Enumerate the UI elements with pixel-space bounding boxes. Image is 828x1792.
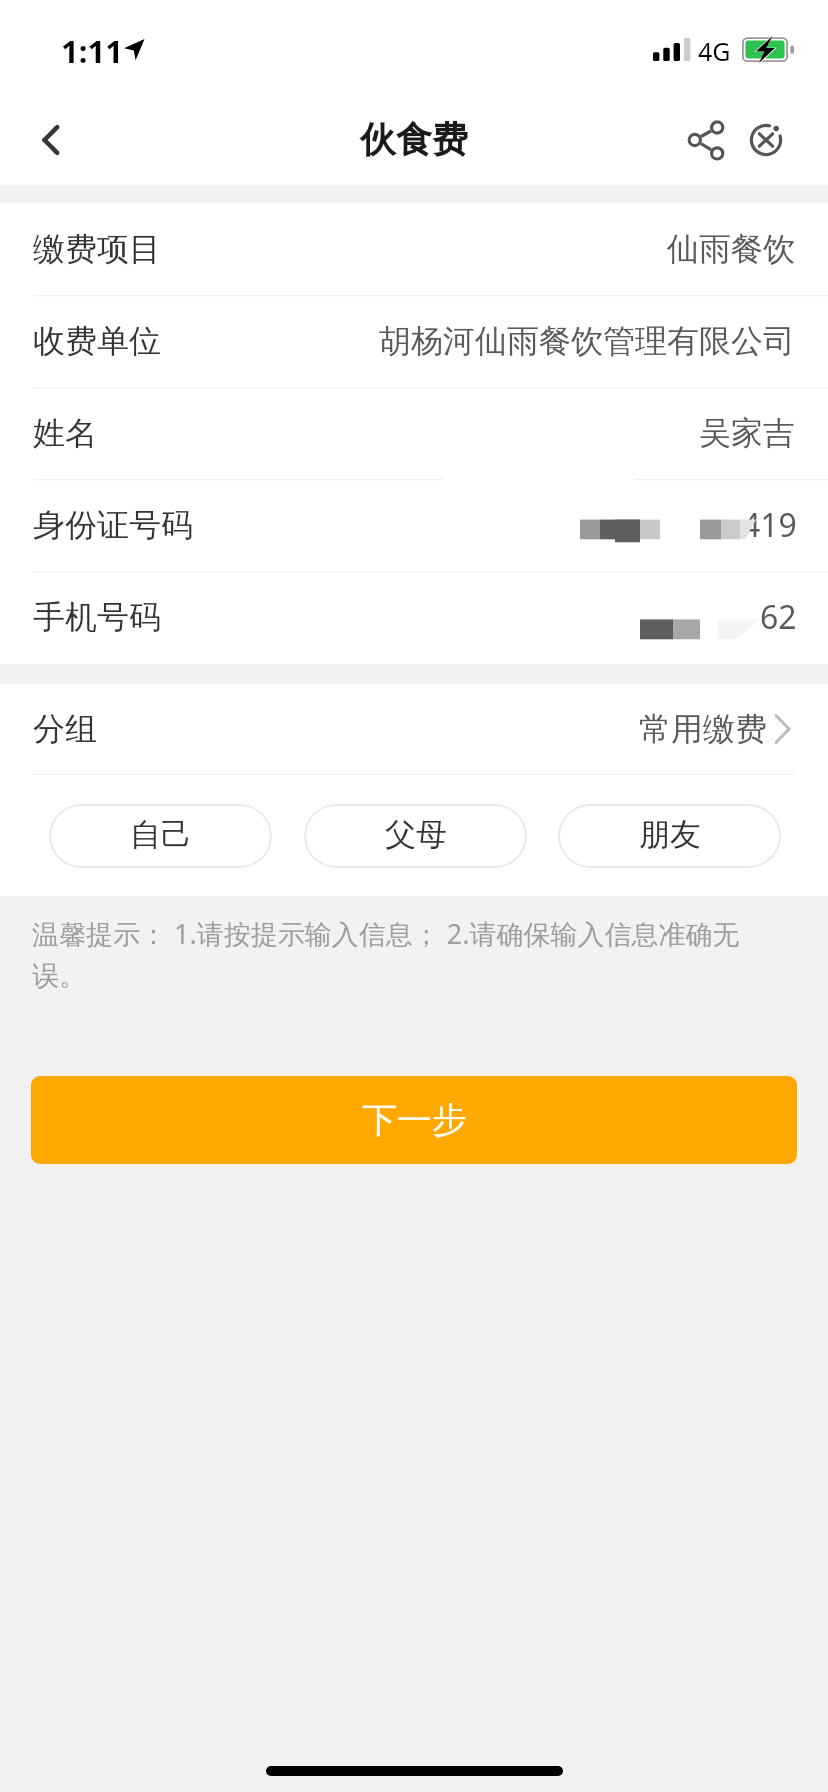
button[interactable]: 身份证号码: [0, 479, 828, 571]
button[interactable]: 下一步: [31, 1076, 797, 1164]
button[interactable]: Share: [676, 100, 738, 180]
staticText: 伙食费: [360, 117, 468, 162]
staticText: 常用缴费: [639, 709, 767, 749]
staticText: 温馨提示： 1.请按提示输入信息； 2.请确保输入信息准确无误。: [32, 915, 768, 993]
staticText: 419: [742, 503, 797, 547]
button[interactable]: 父母: [304, 804, 527, 868]
staticText: 姓名: [33, 413, 97, 453]
button[interactable]: 收费单位: [0, 295, 828, 387]
button[interactable]: 缴费项目: [0, 203, 828, 295]
staticText: 下一步: [362, 1098, 467, 1142]
button[interactable]: 分组: [0, 684, 828, 774]
staticText: 仙雨餐饮: [667, 229, 795, 269]
button[interactable]: 姓名: [0, 387, 828, 479]
staticText: 朋友: [639, 815, 701, 854]
staticText: 62: [760, 595, 797, 639]
staticText: 4G: [698, 34, 731, 68]
button[interactable]: Back: [0, 88, 96, 185]
staticText: 1:11: [61, 30, 123, 72]
staticText: 自己: [130, 815, 192, 854]
staticText: 分组: [33, 709, 97, 749]
staticText: 胡杨河仙雨餐饮管理有限公司: [379, 321, 795, 361]
button[interactable]: 自己: [49, 804, 272, 868]
staticText: 身份证号码: [33, 505, 193, 545]
staticText: 缴费项目: [33, 229, 161, 269]
staticText: 手机号码: [33, 597, 161, 637]
staticText: 收费单位: [33, 321, 161, 361]
button[interactable]: Close: [735, 100, 797, 180]
staticText: 父母: [385, 815, 447, 854]
button[interactable]: 朋友: [558, 804, 781, 868]
staticText: 吴家吉: [699, 413, 795, 453]
button[interactable]: 手机号码: [0, 571, 828, 663]
